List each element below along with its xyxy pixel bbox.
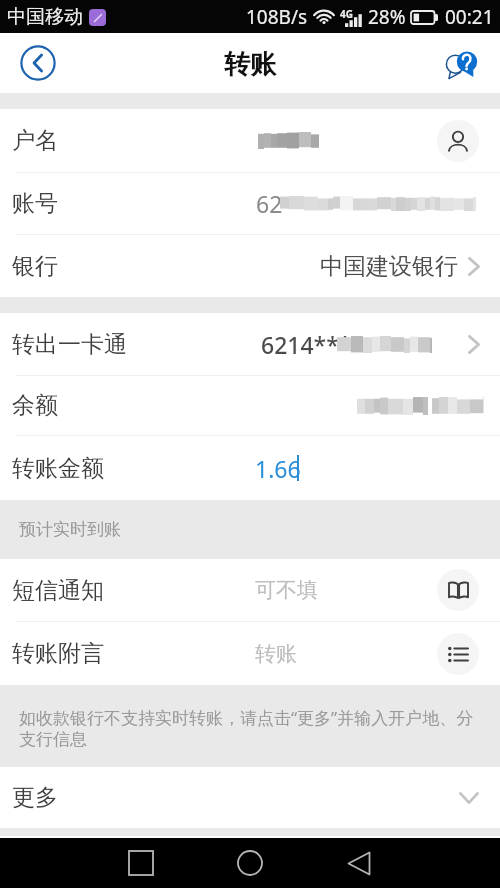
staticText: 1.66 — [255, 453, 301, 484]
staticText: 可不填 — [255, 577, 318, 603]
button[interactable]: 银行 — [0, 235, 500, 297]
button[interactable]: Back — [16, 41, 60, 85]
staticText: 账号 — [12, 189, 58, 218]
staticText: 28% — [368, 4, 406, 30]
button[interactable]: 转账金额 — [0, 436, 500, 500]
staticText: 短信通知 — [12, 576, 104, 605]
button[interactable]: 转出一卡通 — [0, 313, 500, 375]
button[interactable]: Back — [336, 840, 382, 886]
staticText: 4G — [340, 7, 353, 21]
staticText: 余额 — [12, 391, 58, 420]
button[interactable]: 转账附言 — [0, 622, 500, 685]
staticText: 如收款银行不支持实时转账，请点击“更多”并输入开户地、分 — [19, 706, 474, 729]
button[interactable]: 短信通知 — [0, 559, 500, 621]
button[interactable]: 更多 — [0, 767, 500, 828]
button[interactable]: Templates — [437, 569, 479, 611]
staticText: 预计实时到账 — [19, 519, 121, 540]
staticText: 更多 — [12, 783, 58, 812]
button[interactable]: 户名 — [0, 109, 500, 172]
button[interactable]: Home — [227, 840, 273, 886]
staticText: 转账金额 — [12, 454, 104, 483]
staticText: 6214*** — [261, 329, 352, 360]
staticText: 银行 — [12, 252, 58, 281]
staticText: 支行信息 — [19, 729, 87, 750]
staticText: 户名 — [12, 126, 58, 155]
staticText: 中国移动 — [7, 5, 83, 29]
button[interactable]: Help — [440, 44, 484, 88]
staticText: 00:21 — [445, 4, 494, 30]
button[interactable]: Notes — [437, 633, 479, 675]
staticText: 转账 — [255, 641, 297, 667]
staticText: 转账附言 — [12, 639, 104, 668]
staticText: 中国建设银行 — [320, 252, 458, 281]
staticText: 转出一卡通 — [12, 330, 127, 359]
button[interactable]: Recents — [118, 840, 164, 886]
staticText: 转账 — [224, 48, 276, 81]
staticText: 62 — [256, 188, 283, 219]
button[interactable]: 账号 — [0, 173, 500, 234]
button[interactable]: 余额 — [0, 376, 500, 435]
staticText: 108B/s — [246, 4, 308, 30]
button[interactable]: Contacts — [437, 120, 479, 162]
